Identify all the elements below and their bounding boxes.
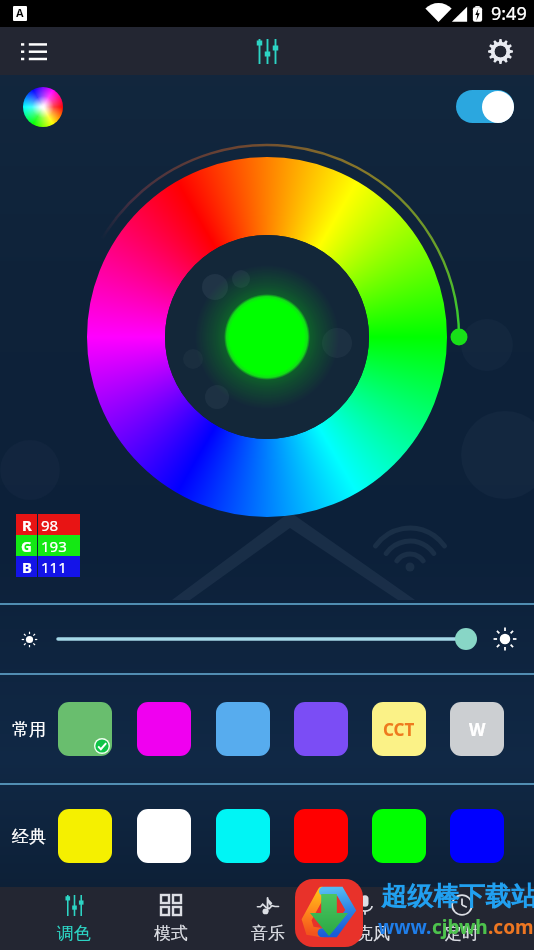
staticText: 麦克风 bbox=[339, 923, 390, 944]
staticText: W bbox=[469, 718, 486, 741]
staticText: .com bbox=[488, 914, 534, 940]
button[interactable]: 定时 bbox=[413, 887, 510, 950]
staticText: R bbox=[22, 515, 32, 535]
button[interactable]: Color tuner bbox=[244, 28, 290, 74]
button[interactable] bbox=[137, 702, 191, 756]
staticText: 98 bbox=[41, 515, 59, 535]
staticText: B bbox=[22, 557, 32, 577]
button[interactable] bbox=[216, 702, 270, 756]
button[interactable] bbox=[58, 702, 112, 756]
button[interactable]: W bbox=[450, 702, 504, 756]
staticText: 超级棒下载站 bbox=[381, 880, 534, 913]
staticText: 193 bbox=[41, 536, 67, 556]
button[interactable]: 音乐 bbox=[219, 887, 316, 950]
button[interactable] bbox=[58, 809, 112, 863]
staticText: 音乐 bbox=[251, 923, 285, 944]
button[interactable] bbox=[372, 809, 426, 863]
staticText: A bbox=[16, 5, 24, 20]
button[interactable] bbox=[294, 702, 348, 756]
button[interactable] bbox=[450, 809, 504, 863]
staticText: www. bbox=[378, 914, 432, 940]
button[interactable]: 麦克风 bbox=[316, 887, 413, 950]
staticText: G bbox=[21, 536, 32, 556]
button[interactable] bbox=[137, 809, 191, 863]
button[interactable] bbox=[216, 809, 270, 863]
button[interactable] bbox=[294, 809, 348, 863]
button[interactable]: Power toggle bbox=[456, 90, 514, 123]
staticText: 模式 bbox=[154, 923, 188, 944]
button[interactable]: Color picker bbox=[23, 87, 63, 127]
button[interactable]: 调色 bbox=[25, 887, 122, 950]
staticText: 经典 bbox=[12, 826, 46, 847]
staticText: 111 bbox=[41, 557, 67, 577]
staticText: 常用 bbox=[12, 719, 46, 740]
staticText: 9:49 bbox=[491, 1, 527, 26]
button[interactable]: Menu bbox=[12, 29, 56, 73]
staticText: 调色 bbox=[57, 923, 91, 944]
button[interactable]: 模式 bbox=[122, 887, 219, 950]
button[interactable]: CCT bbox=[372, 702, 426, 756]
staticText: CCT bbox=[383, 718, 415, 741]
staticText: 定时 bbox=[445, 923, 479, 944]
staticText: cjbwh bbox=[432, 914, 488, 940]
button[interactable]: Settings bbox=[478, 29, 522, 73]
